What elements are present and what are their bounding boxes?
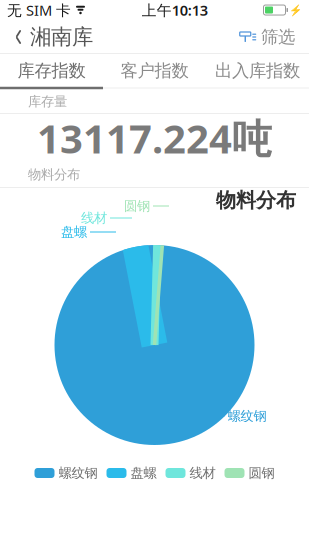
staticText: 湘南库 (30, 24, 93, 50)
staticText: 筛选 (261, 26, 295, 48)
staticText: 圆钢 (124, 198, 150, 214)
staticText: 线材 (81, 210, 107, 226)
staticText: 圆钢 (248, 465, 274, 481)
staticText: 螺纹钢 (227, 408, 266, 424)
staticText: 客户指数 (120, 60, 188, 81)
staticText: 上午10:13 (142, 0, 208, 20)
staticText: 库存量 (28, 93, 67, 110)
staticText: 盘螺 (61, 224, 87, 240)
staticText: ⚡ (289, 4, 302, 16)
button[interactable]: 库存指数 (0, 55, 103, 87)
staticText: 盘螺 (130, 465, 156, 481)
button[interactable]: 筛选 (239, 20, 309, 54)
staticText: 13117.224吨 (37, 111, 272, 164)
staticText: 无 SIM 卡 (7, 0, 71, 20)
staticText: 物料分布 (28, 166, 80, 183)
button[interactable]: Back (0, 18, 93, 56)
button[interactable]: 出入库指数 (206, 55, 309, 87)
button[interactable]: 客户指数 (103, 55, 206, 87)
staticText: 库存指数 (17, 60, 85, 81)
staticText: 物料分布 (216, 188, 296, 213)
staticText: 线材 (189, 465, 215, 481)
staticText: 螺纹钢 (58, 465, 97, 481)
staticText: 出入库指数 (215, 60, 300, 81)
